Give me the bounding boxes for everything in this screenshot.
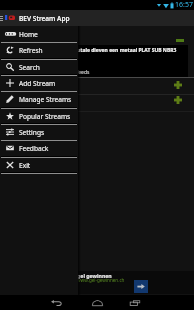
staticText: Popular Streams (19, 112, 71, 121)
button[interactable]: Open navigation drawer (0, 10, 5, 26)
button[interactable]: Refresh (0, 42, 78, 58)
staticText: Search (19, 63, 40, 72)
staticText: BEV Stream App (19, 14, 70, 23)
staticText: Settings (19, 128, 45, 137)
button[interactable]: Exit (0, 157, 78, 173)
staticText: Refresh (19, 46, 43, 55)
button[interactable]: Settings (0, 124, 78, 140)
staticText: my feeds (68, 69, 90, 76)
staticText: Exit (19, 161, 31, 170)
button[interactable]: Popular Streams (0, 108, 78, 124)
staticText: www.gel-gewinnen.ch (77, 277, 125, 283)
staticText: Feedback (19, 144, 49, 153)
staticText: Manage Streams (19, 95, 72, 104)
button[interactable]: Open advertisement (134, 280, 148, 293)
button[interactable]: Add Stream (0, 75, 78, 91)
button[interactable]: Nieuwe Beelden: politie zoekt brutale di… (0, 45, 188, 77)
button[interactable]: Manage Streams (0, 91, 78, 107)
button[interactable]: Recent apps (127, 295, 143, 310)
staticText: Add Stream (19, 79, 56, 88)
other: Add feed (174, 81, 182, 89)
other: Add feed (174, 96, 182, 104)
button[interactable]: Home (0, 26, 78, 42)
staticText: gel gewinnen (77, 272, 112, 279)
button[interactable]: Feedback (0, 140, 78, 156)
staticText: Nieuwe Beelden: politie zoekt brutale di… (0, 47, 184, 54)
staticText: Home (19, 30, 38, 39)
button[interactable]: Add feed (0, 94, 194, 110)
button[interactable]: Search (0, 59, 78, 75)
button[interactable]: Home (89, 295, 105, 310)
staticText: 16:57 (175, 0, 193, 10)
button[interactable]: Add feed (0, 78, 194, 94)
button[interactable]: Back (48, 295, 64, 310)
